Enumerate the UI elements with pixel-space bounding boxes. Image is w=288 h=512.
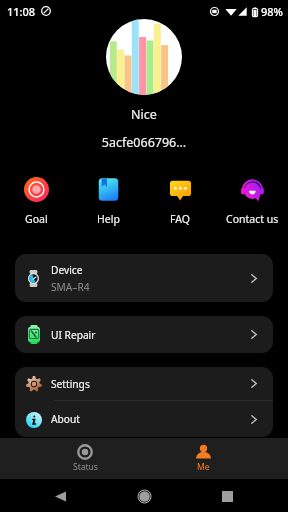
button[interactable]: Contact us: [216, 176, 288, 227]
staticText: Help: [97, 212, 120, 226]
staticText: Contact us: [226, 212, 279, 226]
staticText: SMA–R4: [51, 280, 90, 294]
button[interactable]: Home: [128, 480, 160, 512]
staticText: 98%: [261, 4, 283, 19]
button[interactable]: Device: [15, 254, 273, 302]
staticText: Status: [73, 461, 98, 473]
button[interactable]: Back: [44, 480, 76, 512]
button[interactable]: Recents: [211, 480, 243, 512]
staticText: Nice: [0, 106, 288, 123]
staticText: Settings: [51, 377, 90, 391]
staticText: UI Repair: [51, 328, 96, 342]
staticText: 5acfe066796…: [0, 134, 288, 151]
staticText: Me: [197, 461, 210, 473]
staticText: Device: [51, 263, 83, 277]
button[interactable]: Status: [26, 438, 144, 479]
button[interactable]: Settings: [15, 367, 273, 400]
button[interactable]: Help: [72, 176, 144, 227]
staticText: About: [51, 412, 80, 426]
button[interactable]: FAQ: [144, 176, 216, 227]
button[interactable]: Goal: [0, 176, 72, 227]
button[interactable]: Me: [144, 438, 262, 479]
button[interactable]: UI Repair: [15, 316, 273, 353]
staticText: Goal: [25, 212, 48, 226]
staticText: FAQ: [170, 212, 190, 226]
staticText: 11:08: [7, 4, 36, 19]
button[interactable]: About: [15, 401, 273, 437]
